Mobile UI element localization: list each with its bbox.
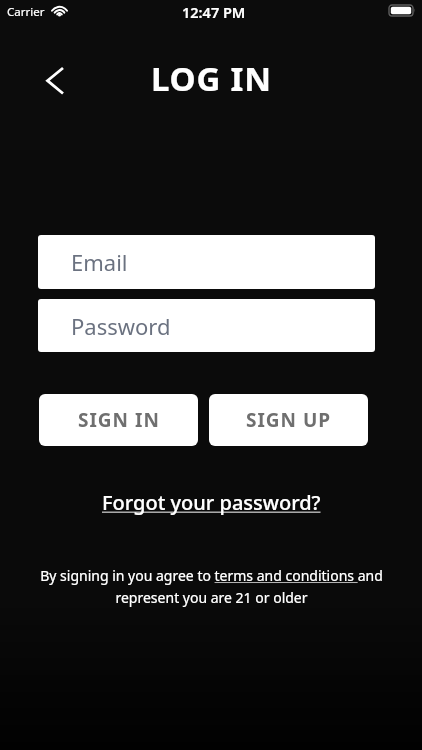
button[interactable]: Password [38, 299, 375, 352]
button[interactable]: Forgot your password? [102, 489, 321, 516]
staticText: SIGN UP [246, 407, 332, 433]
button[interactable]: By signing in you agree to terms and con… [40, 566, 383, 607]
button[interactable]: SIGN IN [39, 394, 198, 446]
staticText: 12:47 PM [182, 2, 246, 22]
staticText: SIGN IN [78, 407, 160, 433]
staticText: LOG IN [151, 56, 272, 101]
staticText: Password [71, 311, 171, 341]
staticText: Carrier [7, 4, 45, 20]
button[interactable] [31, 56, 79, 104]
button[interactable]: Email [38, 235, 375, 289]
staticText: Email [71, 247, 128, 277]
button[interactable]: SIGN UP [209, 394, 368, 446]
